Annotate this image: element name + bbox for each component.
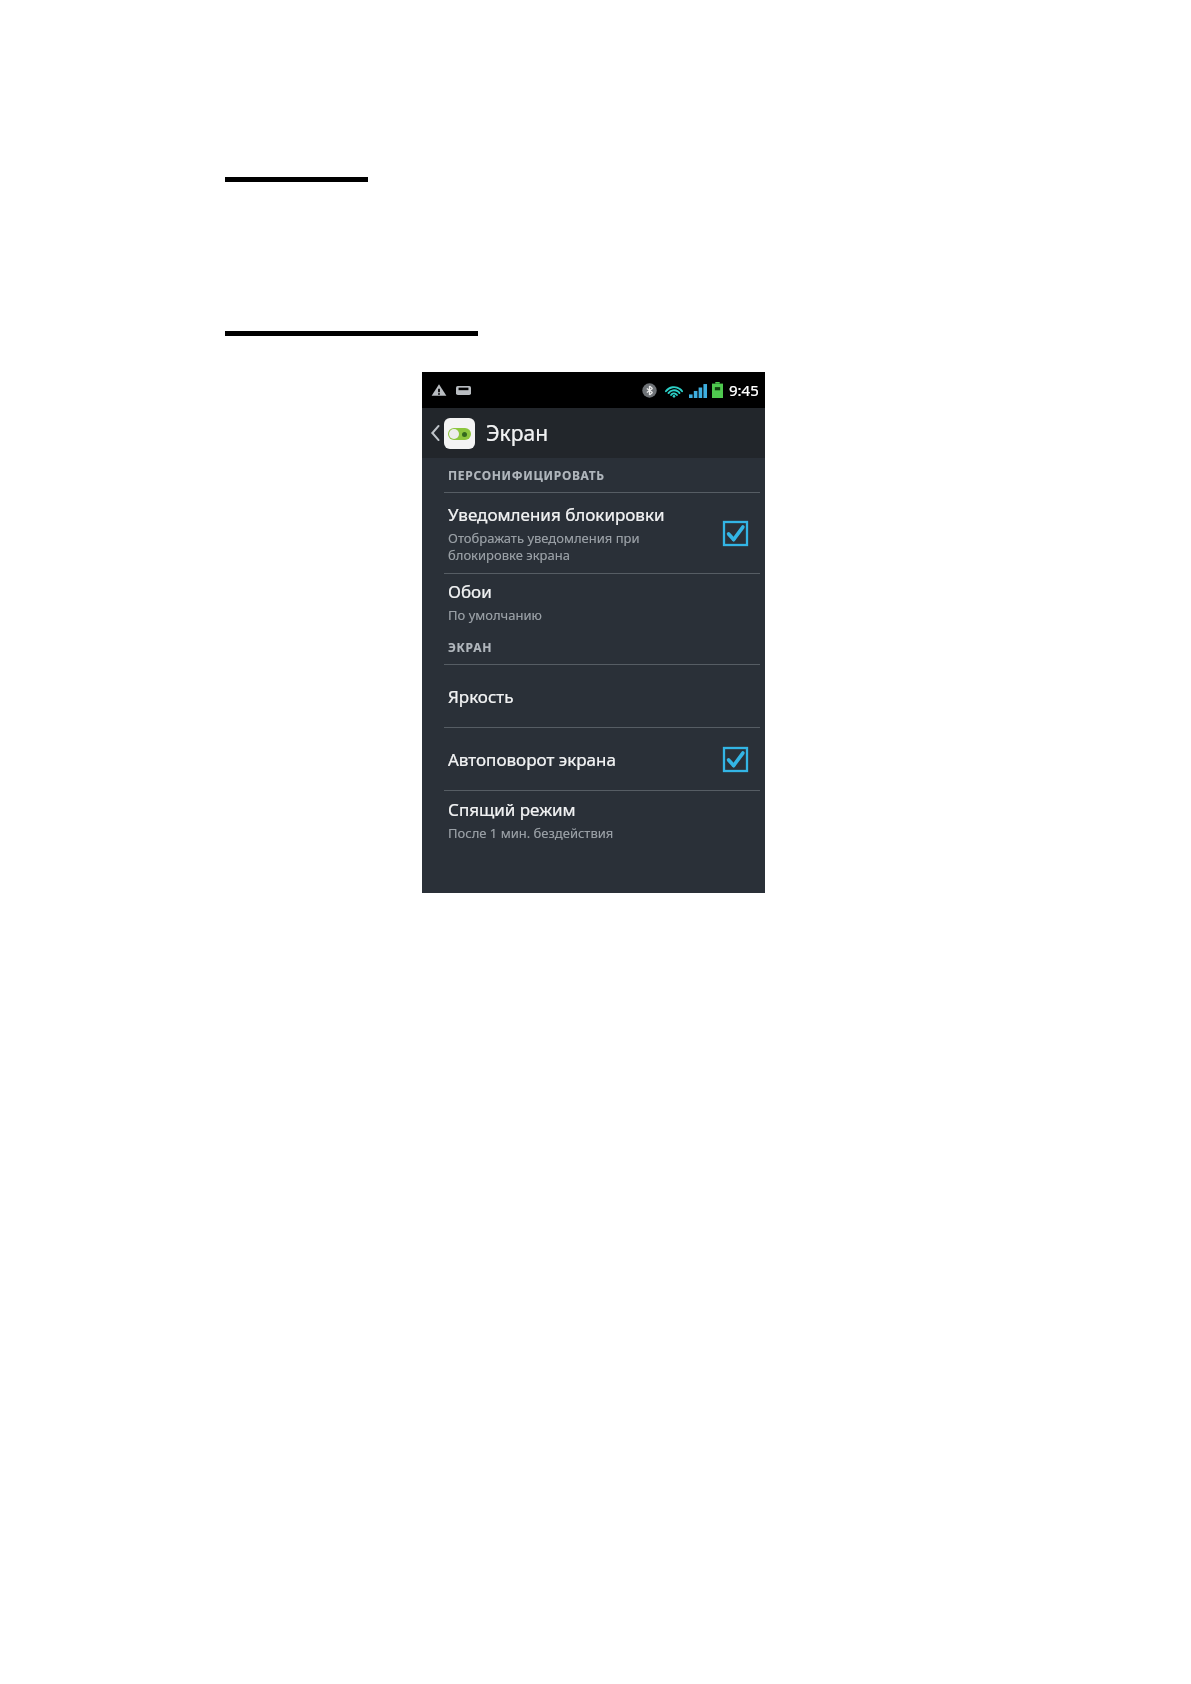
button[interactable]: Обои bbox=[422, 574, 765, 630]
staticText: После 1 мин. бездействия bbox=[448, 824, 614, 842]
staticText: Обои bbox=[448, 580, 492, 603]
button[interactable]: Back bbox=[422, 408, 765, 458]
button[interactable]: Checkbox Уведомления блокировки bbox=[717, 515, 753, 551]
staticText: Автоповорот экрана bbox=[448, 748, 616, 771]
button[interactable]: Спящий режим bbox=[422, 791, 765, 849]
button[interactable]: Уведомления блокировки bbox=[422, 493, 765, 573]
other: Back bbox=[428, 420, 442, 446]
staticText: ПЕРСОНИФИЦИРОВАТЬ bbox=[448, 467, 605, 483]
staticText: По умолчанию bbox=[448, 606, 542, 624]
button[interactable]: Checkbox Автоповорот экрана bbox=[717, 741, 753, 777]
staticText: Спящий режим bbox=[448, 798, 576, 821]
staticText: Экран bbox=[486, 419, 549, 448]
staticText: Уведомления блокировки bbox=[448, 503, 665, 526]
staticText: ЭКРАН bbox=[448, 639, 493, 655]
button[interactable]: Автоповорот экрана bbox=[422, 728, 765, 790]
staticText: Яркость bbox=[448, 685, 514, 708]
staticText: Отображать уведомления при блокировке эк… bbox=[448, 529, 640, 564]
staticText: 9:45 bbox=[729, 380, 759, 400]
button[interactable]: Яркость bbox=[422, 665, 765, 727]
